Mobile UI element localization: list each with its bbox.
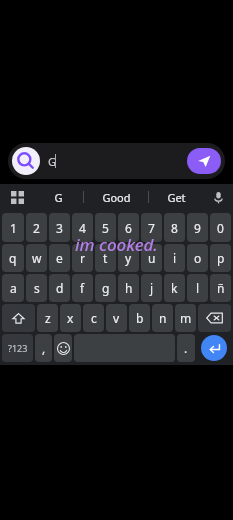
button[interactable]: y	[118, 244, 139, 272]
staticText: b	[136, 310, 144, 326]
button[interactable]: f	[72, 274, 93, 302]
button[interactable]: Search	[12, 147, 40, 175]
button[interactable]: ñ	[210, 274, 231, 302]
staticText: j	[150, 280, 154, 296]
staticText: ,	[42, 340, 46, 356]
button[interactable]: ?123	[2, 334, 33, 362]
staticText: n	[159, 310, 167, 326]
button[interactable]: Shift	[2, 304, 35, 332]
button[interactable]: Apps	[0, 184, 34, 210]
button[interactable]: d	[49, 274, 70, 302]
button[interactable]: l	[187, 274, 208, 302]
staticText: 6	[125, 220, 132, 236]
button[interactable]: Search	[8, 143, 225, 179]
staticText: a	[10, 280, 17, 296]
button[interactable]: m	[175, 304, 196, 332]
button[interactable]: j	[141, 274, 162, 302]
button[interactable]: q	[2, 244, 24, 272]
staticText: 4	[79, 220, 86, 236]
staticText: g	[102, 280, 110, 296]
button[interactable]: 3	[49, 213, 70, 242]
button[interactable]: x	[60, 304, 81, 332]
staticText: Good	[102, 190, 131, 205]
button[interactable]: Emoji	[54, 334, 72, 362]
staticText: 1	[10, 220, 17, 236]
staticText: d	[56, 280, 64, 296]
button[interactable]: 4	[72, 213, 93, 242]
button[interactable]: p	[210, 244, 231, 272]
staticText: p	[217, 250, 225, 266]
staticText: e	[56, 250, 63, 266]
button[interactable]: 5	[95, 213, 116, 242]
staticText: ?123	[8, 342, 28, 354]
staticText: c	[91, 310, 97, 326]
button[interactable]: Good	[84, 184, 148, 210]
button[interactable]: v	[106, 304, 127, 332]
staticText: 0	[217, 220, 224, 236]
button[interactable]: 8	[164, 213, 185, 242]
button[interactable]: g	[95, 274, 116, 302]
button[interactable]: Send	[187, 148, 221, 174]
button[interactable]: 6	[118, 213, 139, 242]
staticText: 8	[171, 220, 178, 236]
button[interactable]: w	[26, 244, 47, 272]
staticText: G	[54, 190, 63, 205]
button[interactable]: e	[49, 244, 70, 272]
button[interactable]: 1	[2, 213, 24, 242]
button[interactable]: Backspace	[198, 304, 231, 332]
staticText: ñ	[217, 280, 225, 296]
staticText: z	[45, 310, 51, 326]
staticText: q	[9, 250, 17, 266]
button[interactable]: ,	[35, 334, 52, 362]
button[interactable]: 2	[26, 213, 47, 242]
staticText: r	[80, 250, 85, 266]
button[interactable]: Voice input	[203, 184, 233, 210]
staticText: k	[171, 280, 178, 296]
staticText: 2	[33, 220, 40, 236]
button[interactable]: t	[95, 244, 116, 272]
button[interactable]: 7	[141, 213, 162, 242]
staticText: w	[32, 250, 42, 266]
button[interactable]: r	[72, 244, 93, 272]
button[interactable]: 9	[187, 213, 208, 242]
staticText: u	[148, 250, 156, 266]
staticText: x	[67, 310, 74, 326]
staticText: s	[34, 280, 40, 296]
staticText: v	[113, 310, 120, 326]
button[interactable]: k	[164, 274, 185, 302]
staticText: t	[103, 250, 108, 266]
button[interactable]: h	[118, 274, 139, 302]
staticText: .	[184, 340, 188, 356]
staticText: o	[194, 250, 202, 266]
staticText: y	[125, 250, 132, 266]
button[interactable]: G	[34, 184, 83, 210]
button[interactable]: Enter	[197, 334, 231, 362]
staticText: 5	[102, 220, 109, 236]
staticText: 3	[56, 220, 63, 236]
staticText: h	[125, 280, 133, 296]
staticText: G	[48, 154, 57, 169]
button[interactable]: .	[177, 334, 195, 362]
staticText: im cooked.	[75, 233, 158, 256]
staticText: Get	[167, 190, 186, 205]
button[interactable]: o	[187, 244, 208, 272]
button[interactable]: 0	[210, 213, 231, 242]
staticText: m	[180, 310, 192, 326]
staticText: 9	[194, 220, 201, 236]
button[interactable]: a	[2, 274, 24, 302]
button[interactable]: u	[141, 244, 162, 272]
button[interactable]: b	[129, 304, 150, 332]
button[interactable]: n	[152, 304, 173, 332]
button[interactable]: z	[37, 304, 58, 332]
button[interactable]: Get	[149, 184, 203, 210]
button[interactable]: s	[26, 274, 47, 302]
button[interactable]: i	[164, 244, 185, 272]
staticText: l	[196, 280, 200, 296]
staticText: f	[80, 280, 85, 296]
button[interactable]: c	[83, 304, 104, 332]
staticText: 7	[148, 220, 155, 236]
staticText: i	[173, 250, 177, 266]
